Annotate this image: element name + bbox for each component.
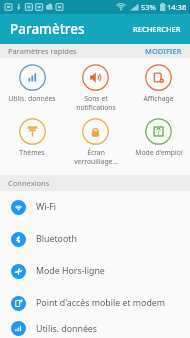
staticText: Écran verrouillage… (74, 148, 118, 166)
staticText: Utilis. données (36, 323, 98, 335)
button[interactable]: Point d'accès mobile et modem (0, 287, 190, 319)
staticText: Wi-Fi (36, 201, 57, 213)
staticText: Bluetooth (36, 233, 77, 245)
button[interactable]: Affichage (127, 63, 190, 104)
button[interactable]: Mode d'emploi (127, 117, 190, 158)
staticText: 53% (141, 2, 156, 12)
staticText: Thèmes (19, 148, 45, 157)
button[interactable]: MODIFIER (137, 44, 190, 58)
button[interactable]: Bluetooth (0, 223, 190, 255)
staticText: RECHERCHER (133, 24, 181, 34)
staticText: 14:36 (167, 2, 187, 12)
staticText: Utilis. données (8, 94, 56, 103)
staticText: MODIFIER (145, 46, 182, 56)
staticText: Paramètres rapides (8, 46, 77, 56)
button[interactable]: Écran verrouillage… (64, 117, 127, 167)
staticText: Mode Hors-ligne (36, 265, 105, 277)
button[interactable]: Thèmes (0, 117, 64, 158)
button[interactable]: Sons et notifications (64, 63, 127, 113)
staticText: Mode d'emploi (135, 148, 183, 157)
staticText: Point d'accès mobile et modem (36, 297, 166, 309)
button[interactable]: Utilis. données (0, 319, 190, 338)
button[interactable]: RECHERCHER (124, 14, 190, 44)
staticText: Affichage (143, 94, 174, 103)
button[interactable]: Wi-Fi (0, 191, 190, 223)
staticText: Sons et notifications (76, 94, 116, 112)
staticText: Paramètres (10, 20, 85, 38)
button[interactable]: Utilis. données (0, 63, 64, 104)
staticText: Connexions (8, 178, 50, 188)
button[interactable]: Mode Hors-ligne (0, 255, 190, 287)
